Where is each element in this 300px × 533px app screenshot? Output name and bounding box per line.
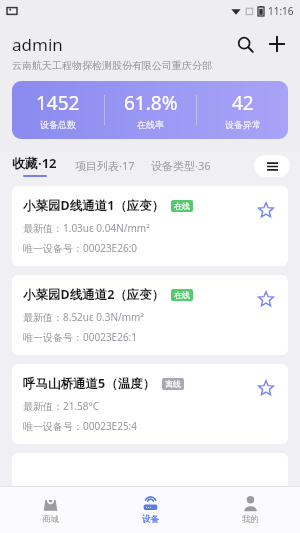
- staticText: 设备异常: [225, 119, 261, 130]
- staticText: 在线: [174, 201, 190, 211]
- staticText: 唯一设备号：00023E26:1: [23, 330, 137, 344]
- button[interactable]: Favorite: [253, 286, 279, 312]
- staticText: 唯一设备号：00023E26:0: [23, 241, 137, 255]
- staticText: 设备总数: [40, 119, 76, 130]
- staticText: 小菜园D线通道2（应变）: [23, 286, 165, 303]
- staticText: 云南航天工程物探检测股份有限公司重庆分部: [12, 59, 212, 72]
- button[interactable]: 收藏·12: [12, 151, 57, 180]
- button[interactable]: Favorite: [253, 197, 279, 223]
- button[interactable]: Add: [262, 29, 292, 59]
- staticText: 商城: [42, 514, 59, 525]
- button[interactable]: Search: [230, 29, 260, 59]
- button[interactable]: 设备类型·36: [151, 155, 211, 176]
- button[interactable]: 1452: [12, 81, 288, 139]
- staticText: 设备类型·36: [151, 158, 211, 173]
- staticText: admin: [12, 33, 63, 56]
- staticText: 项目列表·17: [75, 158, 135, 173]
- staticText: 61.8%: [124, 90, 178, 116]
- staticText: 在线率: [137, 119, 164, 130]
- staticText: 42: [232, 90, 254, 116]
- button[interactable]: 我的: [200, 487, 300, 533]
- staticText: 最新值：21.58°C: [23, 399, 100, 413]
- button[interactable]: 项目列表·17: [75, 155, 135, 176]
- staticText: 11:16: [268, 4, 294, 18]
- staticText: 收藏·12: [12, 154, 57, 172]
- button[interactable]: Favorite: [253, 375, 279, 401]
- button[interactable]: 呼马山桥通道5（温度）: [12, 364, 288, 444]
- staticText: 1452: [36, 90, 80, 116]
- staticText: 最新值：1.03uε 0.04N/mm²: [23, 221, 150, 235]
- staticText: 最新值：8.52uε 0.3N/mm²: [23, 310, 144, 324]
- button[interactable]: 小菜园D线通道1（应变）: [12, 186, 288, 266]
- staticText: 在线: [174, 290, 190, 300]
- staticText: 唯一设备号：00023E25:4: [23, 419, 137, 433]
- staticText: 设备: [142, 514, 159, 525]
- button[interactable]: Menu: [254, 155, 290, 177]
- button[interactable]: 设备: [100, 487, 200, 533]
- button[interactable]: 商城: [0, 487, 100, 533]
- staticText: 我的: [242, 514, 259, 525]
- staticText: 呼马山桥通道5（温度）: [23, 375, 156, 392]
- button[interactable]: 小菜园D线通道2（应变）: [12, 275, 288, 355]
- staticText: 离线: [165, 379, 181, 389]
- staticText: 小菜园D线通道1（应变）: [23, 197, 165, 214]
